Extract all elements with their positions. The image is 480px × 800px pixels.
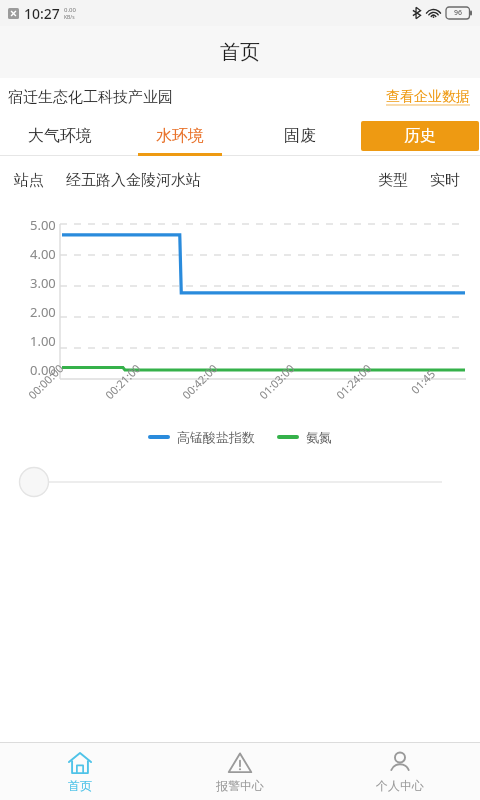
button[interactable]: 固废 — [240, 116, 360, 156]
staticText: 1.00 — [30, 332, 56, 350]
staticText: 96 — [454, 8, 463, 18]
button[interactable]: 高锰酸盐指数 — [148, 429, 255, 445]
staticText: 经五路入金陵河水站 — [66, 171, 201, 190]
button[interactable]: 查看企业数据 — [384, 84, 472, 110]
button[interactable]: Time range slider — [0, 459, 480, 505]
staticText: 首页 — [68, 778, 92, 793]
staticText: 站点 — [14, 171, 44, 190]
button[interactable]: 报警中心 — [160, 743, 320, 800]
staticText: 4.00 — [30, 245, 56, 263]
staticText: 历史 — [404, 126, 436, 146]
staticText: 类型 — [378, 171, 408, 190]
staticText: 0.00 — [30, 361, 56, 379]
staticText: 01:24:00 — [333, 360, 374, 402]
staticText: 个人中心 — [376, 778, 424, 793]
staticText: 0.00 — [64, 6, 76, 14]
button[interactable]: 氨氮 — [277, 429, 332, 445]
staticText: 01:03:00 — [256, 360, 297, 402]
staticText: 01:45 — [408, 366, 439, 397]
button[interactable]: 历史 — [361, 121, 479, 151]
staticText: 固废 — [284, 126, 316, 146]
staticText: 高锰酸盐指数 — [177, 429, 255, 445]
staticText: 查看企业数据 — [386, 88, 470, 106]
button[interactable]: 大气环境 — [0, 116, 120, 156]
button[interactable]: 首页 — [0, 743, 160, 800]
button[interactable]: 经五路入金陵河水站 — [66, 165, 201, 196]
staticText: 大气环境 — [28, 126, 92, 146]
staticText: 00:21:00 — [102, 360, 143, 402]
staticText: 2.00 — [30, 303, 56, 321]
button[interactable]: 个人中心 — [320, 743, 480, 800]
staticText: 00:00:00 — [25, 360, 66, 402]
staticText: 报警中心 — [216, 778, 264, 793]
staticText: 水环境 — [156, 126, 204, 146]
staticText: 5.00 — [30, 216, 56, 234]
staticText: 10:27 — [24, 4, 60, 23]
staticText: 首页 — [220, 40, 260, 65]
button[interactable]: 水环境 — [120, 116, 240, 156]
staticText: 实时 — [430, 171, 460, 190]
staticText: 3.00 — [30, 274, 56, 292]
staticText: 氨氮 — [306, 429, 332, 445]
staticText: 宿迁生态化工科技产业园 — [8, 88, 173, 107]
staticText: KB/s — [64, 14, 75, 21]
staticText: 00:42:00 — [179, 360, 220, 402]
button[interactable]: 实时 — [430, 165, 460, 196]
